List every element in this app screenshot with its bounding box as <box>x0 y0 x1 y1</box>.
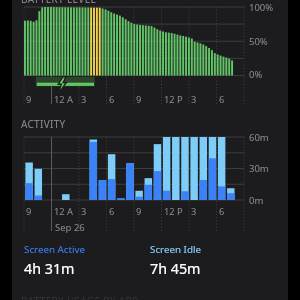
staticText: 0% <box>249 68 263 81</box>
staticText: 6 <box>219 93 225 106</box>
staticText: 50% <box>249 35 268 48</box>
staticText: BATTERY USAGE BY APP <box>21 294 139 300</box>
staticText: 9 <box>136 93 142 106</box>
staticText: 9 <box>26 205 32 218</box>
staticText: 6 <box>219 205 225 218</box>
staticText: Screen Active <box>24 243 86 256</box>
staticText: 3 <box>191 205 197 218</box>
staticText: 3 <box>191 93 197 106</box>
staticText: 3 <box>81 93 87 106</box>
staticText: 60m <box>249 131 269 144</box>
staticText: 12 A <box>54 93 73 106</box>
staticText: 12 A <box>54 205 73 218</box>
staticText: 9 <box>136 205 142 218</box>
staticText: 6 <box>109 205 115 218</box>
staticText: 9 <box>26 93 32 106</box>
staticText: 12 P <box>164 93 183 106</box>
staticText: ACTIVITY <box>21 117 66 131</box>
staticText: 30m <box>249 162 269 175</box>
staticText: Sep 26 <box>55 221 85 234</box>
staticText: 4h 31m <box>24 259 75 278</box>
staticText: 6 <box>109 93 115 106</box>
staticText: 12 P <box>164 205 183 218</box>
button[interactable]: Screen Idle <box>150 243 201 278</box>
staticText: Screen Idle <box>150 243 201 256</box>
staticText: 0m <box>249 194 264 207</box>
staticText: 7h 45m <box>150 259 201 278</box>
staticText: 3 <box>81 205 87 218</box>
staticText: BATTERY LEVEL <box>21 0 97 6</box>
button[interactable]: Screen Active <box>24 243 86 278</box>
button[interactable]: BATTERY LEVEL <box>12 0 288 300</box>
staticText: 100% <box>249 1 274 14</box>
